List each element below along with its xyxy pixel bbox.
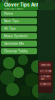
staticText: Make Symbols (4, 34, 28, 38)
staticText: Activate SIP (41, 75, 50, 80)
staticText: Clean Off (40, 83, 51, 85)
staticText: New Tips (4, 19, 19, 23)
staticText: Pause Me (41, 63, 50, 66)
staticText: Cleanup Tubby (4, 49, 28, 53)
button[interactable]: All Tips (1, 26, 37, 32)
staticText: Home (4, 12, 13, 16)
staticText: Clover Tips Ant (4, 2, 39, 8)
button[interactable]: Pause Me (39, 62, 51, 67)
button[interactable]: All In Top (39, 69, 51, 74)
staticText: All In Top (40, 70, 51, 73)
button[interactable]: Cleanup Tubby (1, 48, 37, 54)
staticText: Good Luck Charms (4, 7, 23, 10)
staticText: 9:41 (2, 0, 8, 3)
button[interactable]: Generate Me (1, 41, 37, 47)
button[interactable]: New Tips (1, 18, 37, 24)
button[interactable]: Home (1, 11, 37, 17)
staticText: 100% (45, 0, 53, 3)
button[interactable]: Activate SIP (39, 75, 51, 80)
button[interactable]: Clean Off (39, 82, 51, 87)
button[interactable]: Make Symbols (1, 33, 37, 39)
staticText: Generate Me (4, 42, 24, 46)
staticText: All Tips (4, 27, 16, 31)
